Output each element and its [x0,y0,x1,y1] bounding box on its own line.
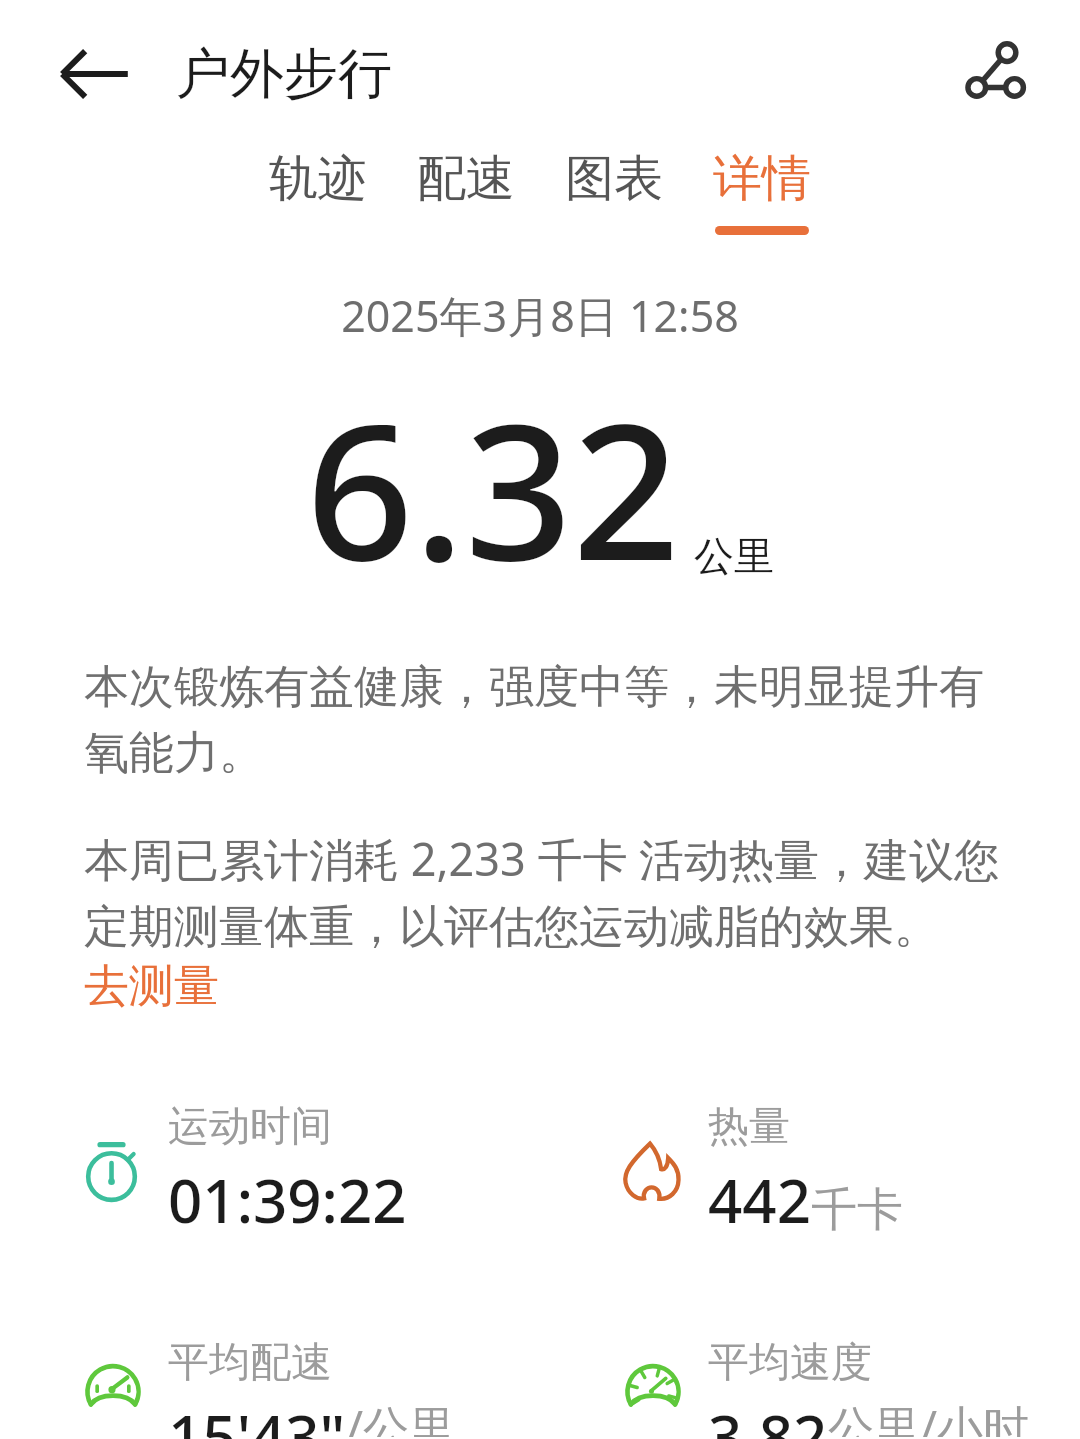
staticText: 运动时间 [168,1101,332,1153]
staticText: 本周已累计消耗 2,233 千卡 活动热量，建议您定期测量体重，以评估您运动减脂… [84,828,1006,956]
staticText: 千卡 [811,1181,903,1239]
button[interactable]: 去测量 [84,958,219,1015]
staticText: 去测量 [84,958,219,1015]
staticText: 热量 [708,1101,790,1153]
staticText: 户外步行 [176,40,392,108]
button[interactable]: 平均配速 [0,1337,540,1439]
button[interactable]: Share [952,32,1036,116]
staticText: 公里/小时 [828,1395,1030,1437]
staticText: 图表 [565,148,663,210]
staticText: 平均配速 [168,1337,332,1389]
button[interactable]: 平均速度 [540,1337,1080,1439]
staticText: 平均速度 [708,1337,872,1389]
staticText: 详情 [713,148,811,210]
staticText: /公里 [346,1395,456,1437]
button[interactable]: 详情 [711,148,813,235]
button[interactable]: 图表 [563,148,665,235]
staticText: 6.32 [306,359,680,615]
staticText: 2025年3月8日 12:58 [0,286,1080,345]
button[interactable]: 运动时间 [0,1101,540,1241]
staticText: 15'43" [168,1395,346,1439]
button[interactable]: 轨迹 [267,148,369,235]
staticText: 01:39:22 [168,1159,407,1241]
button[interactable]: 配速 [415,148,517,235]
staticText: 配速 [417,148,515,210]
staticText: 公里 [694,531,774,581]
staticText: 442 [708,1159,811,1241]
staticText: 本次锻炼有益健康，强度中等，未明显提升有氧能力。 [84,659,1006,782]
staticText: 轨迹 [269,148,367,210]
button[interactable]: Back [54,33,136,115]
button[interactable]: 热量 [540,1101,1080,1241]
staticText: 3.82 [708,1395,828,1439]
